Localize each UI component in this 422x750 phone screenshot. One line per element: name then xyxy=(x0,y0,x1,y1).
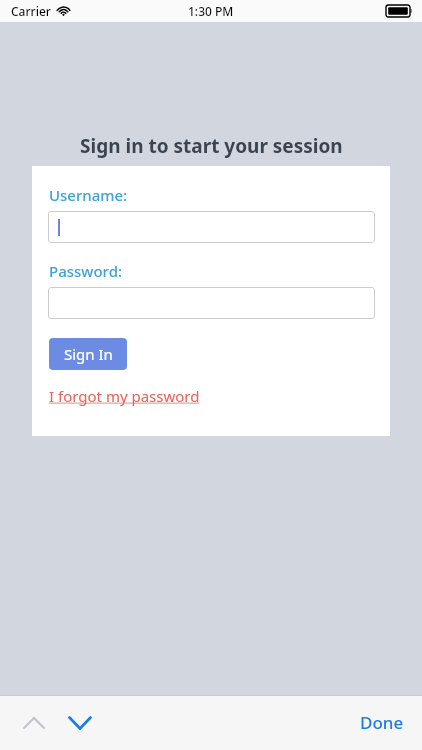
button[interactable]: Previous field xyxy=(14,703,54,743)
button[interactable]: I forgot my password xyxy=(49,386,200,406)
staticText: Password: xyxy=(49,261,123,281)
button[interactable]: Username input xyxy=(48,211,375,243)
staticText: Sign in to start your session xyxy=(80,133,343,159)
button[interactable]: Next field xyxy=(60,703,100,743)
staticText: Username: xyxy=(49,185,128,205)
staticText: Done xyxy=(360,711,404,734)
button[interactable]: Sign In xyxy=(49,338,127,370)
staticText: I forgot my password xyxy=(49,386,200,406)
button[interactable]: Done xyxy=(352,705,412,740)
staticText: 1:30 PM xyxy=(188,3,234,19)
button[interactable]: Password input xyxy=(48,287,375,319)
staticText: Sign In xyxy=(64,344,113,364)
staticText: Carrier xyxy=(11,3,51,19)
